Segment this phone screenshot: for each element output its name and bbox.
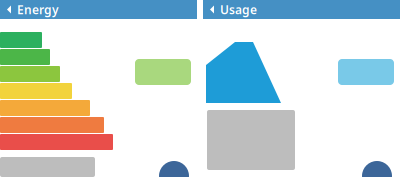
staticText: Energy <box>17 1 59 17</box>
staticText: Usage <box>220 1 257 17</box>
